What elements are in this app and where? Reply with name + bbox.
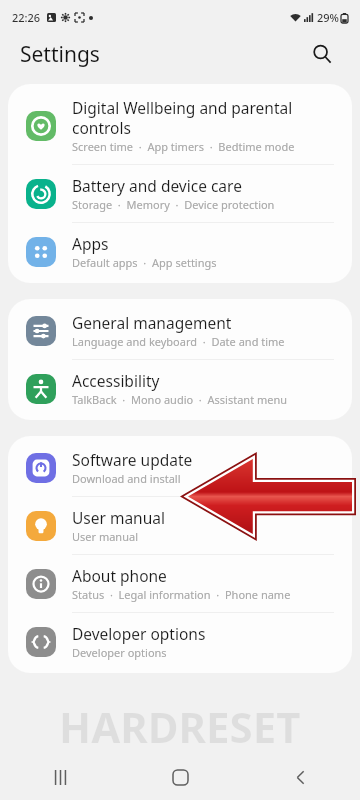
button[interactable]: General management xyxy=(8,302,352,359)
button[interactable]: Software update xyxy=(8,439,352,496)
button[interactable]: Back xyxy=(255,754,345,800)
staticText: About phone xyxy=(72,565,167,586)
button[interactable]: Home xyxy=(135,754,225,800)
staticText: Download and install xyxy=(72,471,181,486)
staticText: HARDRESET xyxy=(59,698,301,755)
button[interactable]: About phone xyxy=(8,555,352,612)
staticText: Default apps · App settings xyxy=(72,255,217,270)
button[interactable]: Battery and device care xyxy=(8,165,352,222)
staticText: Language and keyboard · Date and time xyxy=(72,334,285,349)
staticText: User manual xyxy=(72,507,165,528)
button[interactable]: Developer options xyxy=(8,613,352,670)
button[interactable]: Recent apps xyxy=(15,754,105,800)
button[interactable]: Digital Wellbeing and parental controls xyxy=(8,87,352,164)
button[interactable]: Accessibility xyxy=(8,360,352,417)
staticText: Developer options xyxy=(72,645,167,660)
staticText: TalkBack · Mono audio · Assistant menu xyxy=(72,392,288,407)
staticText: User manual xyxy=(72,529,138,544)
staticText: General management xyxy=(72,312,232,333)
button[interactable]: Apps xyxy=(8,223,352,280)
staticText: Screen time · App timers · Bedtime mode xyxy=(72,139,295,154)
staticText: Software update xyxy=(72,449,193,470)
staticText: Settings xyxy=(20,40,100,69)
staticText: Battery and device care xyxy=(72,175,242,196)
staticText: Storage · Memory · Device protection xyxy=(72,197,275,212)
staticText: Apps xyxy=(72,233,109,254)
staticText: 22:26 xyxy=(12,10,41,25)
staticText: Digital Wellbeing and parental controls xyxy=(72,97,293,138)
staticText: Status · Legal information · Phone name xyxy=(72,587,291,602)
staticText: Developer options xyxy=(72,623,206,644)
button[interactable]: Search xyxy=(304,36,340,72)
button[interactable]: User manual xyxy=(8,497,352,554)
staticText: 29% xyxy=(317,10,339,25)
staticText: Accessibility xyxy=(72,370,160,391)
